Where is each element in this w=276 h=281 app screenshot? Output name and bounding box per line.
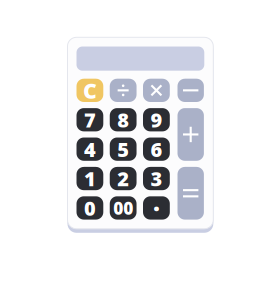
staticText: 2 — [117, 165, 129, 192]
button[interactable]: 7 — [76, 108, 103, 131]
button[interactable]: Multiply — [143, 79, 170, 102]
staticText: 6 — [150, 136, 162, 162]
staticText: 1 — [84, 165, 96, 192]
staticText: 4 — [84, 136, 96, 162]
staticText: C — [83, 76, 97, 104]
staticText: 3 — [150, 165, 162, 192]
staticText: 0 — [84, 195, 96, 221]
button[interactable]: Clear — [76, 79, 103, 102]
button[interactable]: 9 — [143, 108, 170, 131]
button[interactable]: Plus — [177, 108, 204, 161]
staticText: · — [153, 192, 160, 224]
button[interactable]: 1 — [76, 167, 103, 190]
staticText: 5 — [117, 136, 129, 162]
staticText: 7 — [84, 106, 96, 133]
staticText: 9 — [150, 106, 162, 133]
staticText: 00 — [113, 196, 133, 219]
button[interactable]: 6 — [143, 137, 170, 161]
button[interactable]: Equals — [177, 167, 204, 220]
button[interactable]: Decimal point — [143, 196, 170, 220]
staticText: 8 — [117, 106, 129, 133]
button[interactable]: 0 — [76, 196, 103, 220]
button[interactable]: 3 — [143, 167, 170, 190]
button[interactable]: 4 — [76, 137, 103, 161]
button[interactable]: 2 — [110, 167, 137, 190]
button[interactable]: Minus — [177, 79, 204, 102]
button[interactable]: 8 — [110, 108, 137, 131]
button[interactable]: 5 — [110, 137, 137, 161]
button[interactable]: Divide — [110, 79, 137, 102]
button[interactable]: Double zero — [110, 196, 137, 220]
